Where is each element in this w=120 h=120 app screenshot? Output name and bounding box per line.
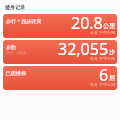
staticText: 今天 下午7:08	[90, 30, 115, 35]
staticText: 步数	[6, 44, 16, 50]
staticText: 健身记录	[5, 4, 25, 10]
button[interactable]: 已爬楼梯	[3, 66, 117, 90]
staticText: 32,055	[58, 40, 109, 60]
button[interactable]: 步数	[3, 40, 117, 64]
staticText: 层	[109, 74, 115, 82]
staticText: 今天 下午7:08	[90, 82, 115, 87]
staticText: 步行 + 跑步	[6, 50, 27, 55]
staticText: 6	[99, 66, 109, 86]
staticText: 步行 + 跑步距离	[6, 18, 42, 25]
staticText: 20.8	[71, 14, 103, 34]
staticText: 今天 下午7:08	[90, 56, 115, 61]
button[interactable]: 步行 + 跑步距离	[3, 14, 117, 38]
staticText: 已爬楼梯	[6, 70, 26, 76]
staticText: 步	[109, 48, 115, 56]
staticText: 公里	[103, 22, 115, 30]
